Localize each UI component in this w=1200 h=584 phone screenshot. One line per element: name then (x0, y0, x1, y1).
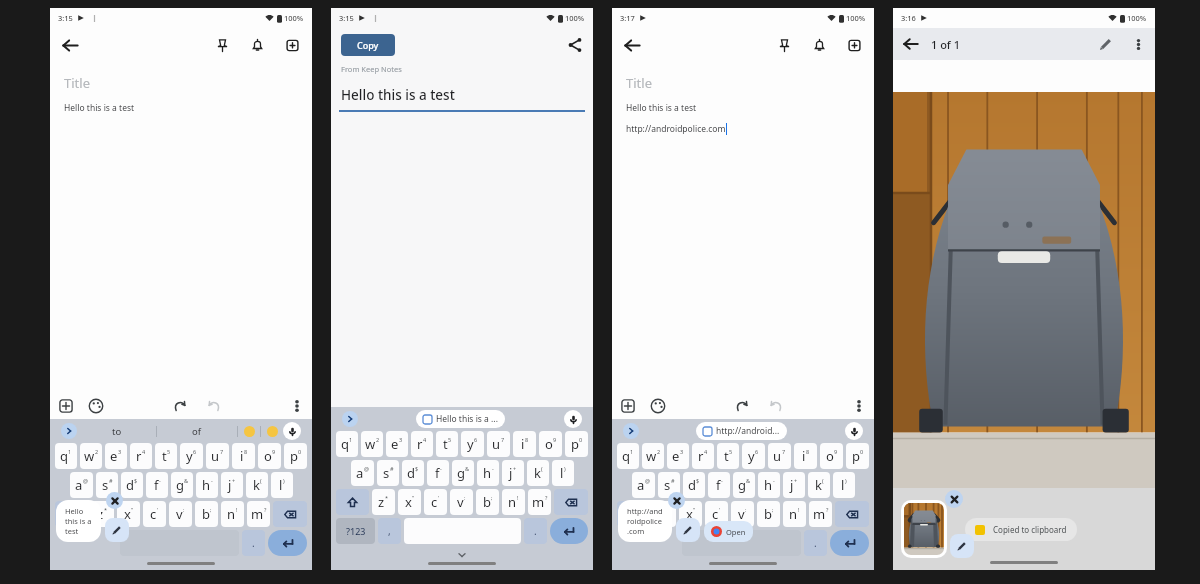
button[interactable]: Add (620, 398, 636, 414)
button[interactable]: Enter (268, 530, 307, 556)
button[interactable]: Voice input (845, 422, 863, 440)
button[interactable]: . (804, 530, 827, 556)
button[interactable]: Backspace (554, 489, 588, 515)
button[interactable]: Archive (285, 38, 300, 53)
button[interactable]: Reminder (812, 38, 827, 53)
button[interactable]: z (372, 489, 395, 515)
button[interactable]: i (513, 431, 536, 457)
button[interactable] (261, 426, 283, 437)
button[interactable]: Shift (55, 501, 88, 527)
button[interactable]: r (411, 431, 433, 457)
button[interactable]: s (377, 460, 399, 486)
button[interactable]: q (55, 443, 77, 469)
button[interactable]: c (143, 501, 166, 527)
button[interactable]: b (757, 501, 780, 527)
button[interactable]: n (783, 501, 806, 527)
button[interactable]: Redo (206, 398, 222, 414)
button[interactable]: y (180, 443, 203, 469)
button[interactable]: Enter (550, 518, 588, 544)
button[interactable]: a (70, 472, 93, 498)
button[interactable]: Pin (777, 38, 792, 53)
button[interactable]: Color (650, 398, 666, 414)
button[interactable]: Edit (1098, 36, 1114, 52)
button[interactable]: Add (58, 398, 74, 414)
button[interactable]: j (783, 472, 805, 498)
button[interactable]: Archive (847, 38, 862, 53)
button[interactable]: g (733, 472, 755, 498)
button[interactable]: h (196, 472, 218, 498)
button[interactable]: e (386, 431, 408, 457)
button[interactable]: w (642, 443, 664, 469)
button[interactable]: Color (88, 398, 104, 414)
button[interactable]: l (833, 472, 855, 498)
button[interactable]: l (271, 472, 293, 498)
button[interactable]: Edit photo (950, 534, 974, 558)
button[interactable]: . (242, 530, 265, 556)
button[interactable]: p (284, 443, 307, 469)
button[interactable]: Close (106, 492, 123, 509)
button[interactable]: c (705, 501, 728, 527)
button[interactable]: ?123 (336, 518, 375, 544)
button[interactable]: o (258, 443, 281, 469)
button[interactable]: w (361, 431, 383, 457)
button[interactable]: Copied to clipboard (975, 524, 1067, 535)
button[interactable]: d (402, 460, 424, 486)
button[interactable]: Undo (172, 398, 188, 414)
button[interactable]: Back (624, 37, 641, 54)
button[interactable]: r (692, 443, 714, 469)
button[interactable]: Hello this is a ... (423, 413, 498, 425)
button[interactable]: o (820, 443, 843, 469)
button[interactable]: u (768, 443, 791, 469)
button[interactable]: e (667, 443, 689, 469)
button[interactable]: Voice input (564, 410, 582, 428)
button[interactable]: u (487, 431, 510, 457)
button[interactable]: z (653, 501, 676, 527)
button[interactable]: j (502, 460, 524, 486)
button[interactable]: Shift (617, 501, 650, 527)
button[interactable] (904, 503, 944, 555)
button[interactable]: m (247, 501, 270, 527)
button[interactable] (342, 411, 358, 427)
button[interactable]: q (617, 443, 639, 469)
button[interactable]: m (809, 501, 832, 527)
button[interactable]: h (758, 472, 780, 498)
button[interactable]: Shift (336, 489, 369, 515)
button[interactable]: k (527, 460, 549, 486)
button[interactable]: i (794, 443, 817, 469)
button[interactable]: i (232, 443, 255, 469)
button[interactable]: t (717, 443, 739, 469)
button[interactable]: Edit (105, 518, 129, 542)
button[interactable]: Undo (734, 398, 750, 414)
button[interactable]: Open (711, 526, 746, 537)
button[interactable] (61, 423, 77, 439)
button[interactable]: Backspace (273, 501, 307, 527)
button[interactable]: t (436, 431, 458, 457)
button[interactable]: d (683, 472, 705, 498)
button[interactable]: , (378, 518, 401, 544)
button[interactable]: p (846, 443, 869, 469)
button[interactable]: k (808, 472, 830, 498)
button[interactable]: k (246, 472, 268, 498)
button[interactable]: a (632, 472, 655, 498)
button[interactable]: m (528, 489, 551, 515)
button[interactable]: r (130, 443, 152, 469)
button[interactable]: z (91, 501, 114, 527)
button[interactable]: http://and (627, 506, 663, 536)
button[interactable]: b (476, 489, 499, 515)
button[interactable]: Voice input (283, 422, 301, 440)
button[interactable] (238, 426, 260, 437)
button[interactable]: Copy (357, 39, 379, 51)
button[interactable]: http://android... (703, 425, 780, 437)
button[interactable]: Close (668, 492, 685, 509)
button[interactable]: f (427, 460, 449, 486)
button[interactable]: v (450, 489, 473, 515)
button[interactable]: f (146, 472, 168, 498)
button[interactable]: g (452, 460, 474, 486)
button[interactable]: o (539, 431, 562, 457)
button[interactable]: Backspace (835, 501, 869, 527)
button[interactable]: n (502, 489, 525, 515)
button[interactable]: l (552, 460, 574, 486)
button[interactable]: More options (852, 399, 866, 413)
button[interactable]: v (169, 501, 192, 527)
